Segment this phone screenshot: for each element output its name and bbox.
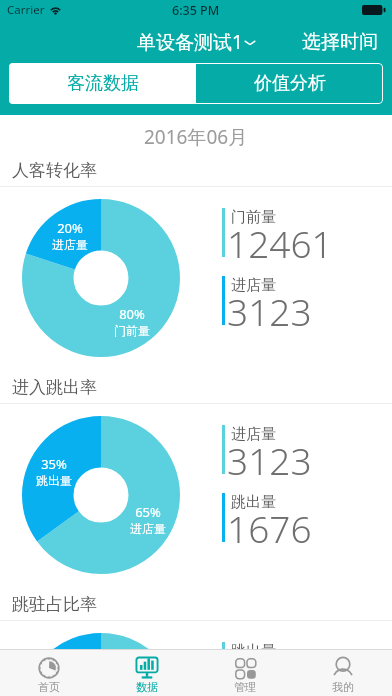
button[interactable]: 我的	[294, 650, 392, 696]
staticText: 3123	[227, 286, 312, 335]
staticText: 跳出量	[231, 493, 276, 512]
button[interactable]: 单设备测试1	[137, 29, 257, 55]
button[interactable]: 管理	[196, 650, 294, 696]
staticText: 跳出量	[36, 473, 72, 488]
staticText: 进入跳出率	[12, 377, 97, 398]
staticText: 我的	[332, 680, 354, 694]
staticText: Carrier	[7, 2, 45, 18]
staticText: 进店量	[52, 237, 88, 252]
staticText: 1676	[227, 503, 312, 552]
button[interactable]: 选择时间	[302, 30, 378, 54]
staticText: 进店量	[130, 521, 166, 536]
staticText: 客流数据	[67, 72, 139, 95]
staticText: 跳驻占比率	[12, 594, 97, 615]
button[interactable]: 价值分析	[196, 63, 383, 104]
staticText: 进店量	[231, 276, 276, 295]
staticText: 选择时间	[302, 30, 378, 54]
staticText: 首页	[38, 680, 60, 694]
staticText: 跳出量	[231, 642, 276, 649]
staticText: 进店量	[231, 425, 276, 444]
staticText: 12461	[227, 218, 333, 267]
staticText: 20%	[57, 219, 83, 237]
staticText: 人客转化率	[12, 160, 97, 181]
staticText: 65%	[135, 503, 161, 521]
staticText: 80%	[119, 305, 145, 323]
button[interactable]: 首页	[0, 650, 98, 696]
button[interactable]: 客流数据	[9, 63, 196, 104]
button[interactable]: 数据	[98, 650, 196, 696]
staticText: 数据	[136, 680, 158, 694]
staticText: 3123	[227, 435, 312, 484]
staticText: 管理	[234, 680, 256, 694]
staticText: 门前量	[231, 208, 276, 227]
staticText: 门前量	[114, 323, 150, 338]
staticText: 6:35 PM	[172, 2, 220, 19]
staticText: 2016年06月	[144, 124, 248, 150]
staticText: 单设备测试1	[137, 29, 243, 55]
staticText: 35%	[41, 455, 67, 473]
staticText: 价值分析	[254, 72, 326, 95]
